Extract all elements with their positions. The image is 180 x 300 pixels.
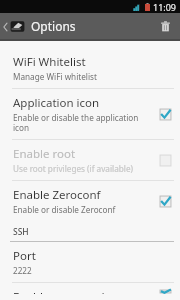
button[interactable]: Enable password [0,283,180,300]
staticText: Enable password [13,289,105,294]
staticText: SSH [13,226,29,238]
staticText: Application icon [13,95,100,111]
button[interactable]: Port [0,242,180,282]
staticText: Manage WiFi whitelist [13,71,97,82]
staticText: 11:09 [153,1,177,13]
staticText: Enable root [13,146,76,162]
button[interactable]: Unchecked [159,154,172,167]
staticText: Options [31,18,76,34]
button[interactable]: Enable Zeroconf [0,181,180,221]
button[interactable]: Delete [151,17,180,36]
staticText: Use root privileges (if available) [13,163,133,174]
staticText: Enable Zeroconf [13,187,101,203]
staticText: 2222 [13,265,32,276]
staticText: Enable or disable Zeroconf [13,204,116,215]
button[interactable]: Enable root [0,140,180,180]
staticText: Enable or disable the application icon [13,112,153,133]
button[interactable]: Navigate up [0,20,27,33]
staticText: WiFi Whitelist [13,54,86,70]
staticText: Port [13,248,36,264]
button[interactable]: Checked [159,108,172,121]
button[interactable]: WiFi Whitelist [0,48,180,88]
button[interactable]: Application icon [0,89,180,139]
button[interactable]: Checked [159,289,172,294]
button[interactable]: Checked [159,195,172,208]
